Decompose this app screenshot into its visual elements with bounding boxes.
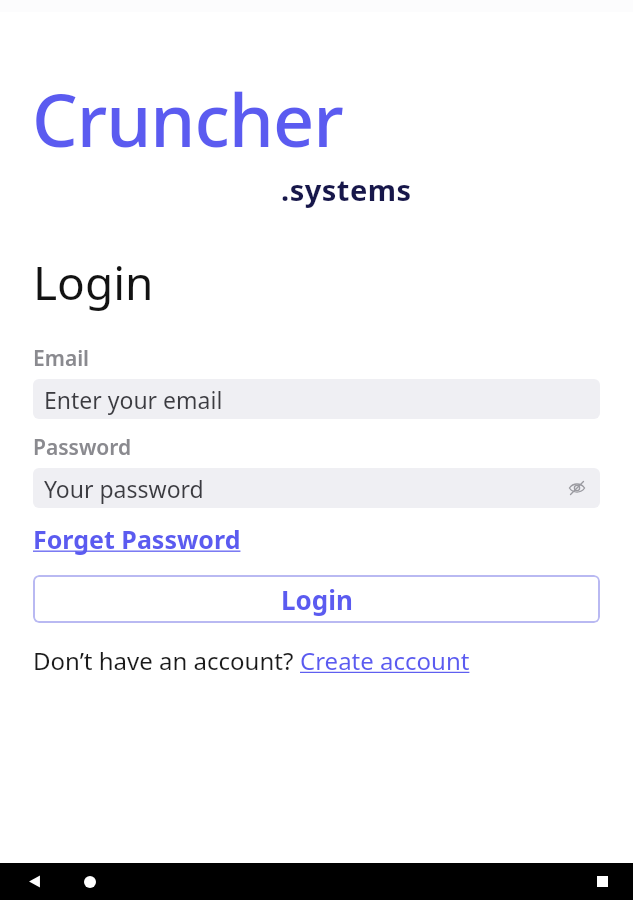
staticText: Enter your email [44,384,223,415]
button[interactable]: Enter your email [33,379,600,419]
button[interactable]: Your password [33,468,600,508]
staticText: Login [281,582,353,617]
button[interactable]: Show password [564,475,590,501]
button[interactable]: Back [14,863,54,900]
staticText: Cruncher [32,70,343,168]
staticText: Forget Password [33,522,241,556]
button[interactable]: Recent apps [582,863,622,900]
staticText: Don’t have an account? [33,644,300,677]
staticText: Email [33,344,90,373]
button[interactable]: Login [33,575,600,623]
staticText: Create account [300,644,470,677]
button[interactable]: Forget Password [33,522,241,556]
button[interactable]: Home [70,863,110,900]
staticText: .systems [281,170,412,209]
staticText: Password [33,433,132,462]
button[interactable]: Create account [300,644,470,677]
staticText: Login [33,251,154,314]
staticText: Your password [44,473,204,504]
